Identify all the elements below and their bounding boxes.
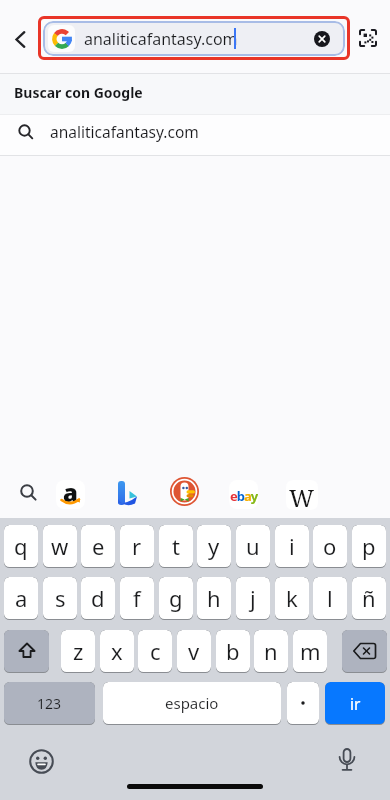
- button[interactable]: ebay: [229, 480, 258, 509]
- staticText: k: [286, 583, 298, 613]
- button[interactable]: y: [197, 525, 231, 568]
- staticText: j: [250, 583, 256, 613]
- staticText: ebay: [230, 487, 258, 505]
- staticText: e: [92, 531, 105, 561]
- button[interactable]: [43, 21, 345, 56]
- staticText: a: [15, 583, 28, 613]
- button[interactable]: [337, 748, 357, 774]
- button[interactable]: f: [120, 577, 154, 620]
- button[interactable]: [29, 749, 54, 774]
- button[interactable]: d: [81, 577, 115, 620]
- staticText: ir: [350, 693, 361, 714]
- button[interactable]: [0, 115, 390, 155]
- button[interactable]: a: [56, 480, 85, 509]
- button[interactable]: [287, 682, 319, 725]
- staticText: o: [323, 531, 337, 561]
- button[interactable]: [15, 31, 26, 48]
- staticText: g: [169, 583, 183, 613]
- button[interactable]: m: [293, 630, 327, 673]
- button[interactable]: l: [313, 577, 347, 620]
- staticText: m: [300, 636, 321, 666]
- button[interactable]: j: [236, 577, 270, 620]
- button[interactable]: ir: [325, 682, 385, 725]
- staticText: Buscar con Google: [14, 83, 143, 102]
- button[interactable]: n: [254, 630, 288, 673]
- staticText: analiticafantasy.com: [50, 121, 199, 142]
- button[interactable]: i: [275, 525, 309, 568]
- staticText: l: [327, 583, 333, 613]
- button[interactable]: [4, 630, 49, 673]
- staticText: ñ: [362, 583, 376, 613]
- button[interactable]: s: [43, 577, 77, 620]
- button[interactable]: t: [159, 525, 193, 568]
- staticText: espacio: [165, 693, 219, 713]
- button[interactable]: w: [43, 525, 77, 568]
- button[interactable]: g: [159, 577, 193, 620]
- button[interactable]: v: [177, 630, 211, 673]
- staticText: r: [132, 531, 142, 561]
- staticText: w: [51, 531, 69, 561]
- staticText: c: [150, 636, 161, 666]
- staticText: v: [188, 636, 200, 666]
- button[interactable]: 123: [4, 682, 95, 725]
- staticText: i: [289, 531, 295, 561]
- button[interactable]: W: [286, 480, 318, 510]
- staticText: u: [246, 531, 260, 561]
- button[interactable]: r: [120, 525, 154, 568]
- staticText: d: [91, 583, 105, 613]
- staticText: analiticafantasy.com: [84, 28, 238, 50]
- button[interactable]: h: [197, 577, 231, 620]
- button[interactable]: p: [352, 525, 386, 568]
- button[interactable]: [20, 484, 37, 501]
- staticText: t: [172, 531, 180, 561]
- button[interactable]: z: [61, 630, 95, 673]
- staticText: a: [63, 480, 78, 505]
- button[interactable]: o: [313, 525, 347, 568]
- button[interactable]: [359, 29, 377, 47]
- staticText: q: [14, 531, 28, 561]
- button[interactable]: b: [216, 630, 250, 673]
- staticText: b: [226, 636, 240, 666]
- staticText: f: [133, 583, 141, 613]
- staticText: s: [55, 583, 66, 613]
- button[interactable]: [170, 477, 199, 506]
- staticText: h: [207, 583, 221, 613]
- button[interactable]: espacio: [103, 682, 281, 725]
- button[interactable]: a: [4, 577, 38, 620]
- button[interactable]: ñ: [352, 577, 386, 620]
- staticText: p: [362, 531, 376, 561]
- button[interactable]: x: [100, 630, 134, 673]
- button[interactable]: k: [275, 577, 309, 620]
- staticText: x: [111, 636, 123, 666]
- button[interactable]: [115, 479, 139, 508]
- button[interactable]: q: [4, 525, 38, 568]
- button[interactable]: [314, 31, 330, 47]
- staticText: y: [208, 531, 220, 561]
- staticText: W: [289, 481, 315, 510]
- button[interactable]: c: [138, 630, 172, 673]
- staticText: z: [73, 636, 84, 666]
- staticText: n: [264, 636, 278, 666]
- staticText: 123: [37, 694, 62, 713]
- button[interactable]: u: [236, 525, 270, 568]
- button[interactable]: [342, 630, 387, 673]
- button[interactable]: e: [81, 525, 115, 568]
